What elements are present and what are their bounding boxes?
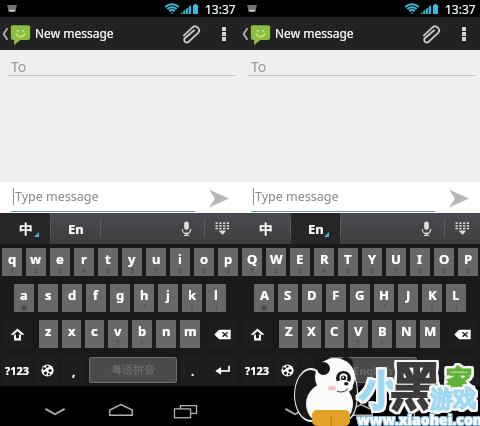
button[interactable]: s: [38, 284, 58, 312]
button[interactable]: Backspace: [447, 320, 478, 348]
button[interactable]: ?123: [242, 356, 272, 384]
button[interactable]: Attach: [170, 17, 208, 50]
staticText: B: [378, 322, 387, 340]
button[interactable]: More options: [448, 17, 480, 50]
button[interactable]: O: [434, 248, 454, 276]
button[interactable]: G: [350, 284, 370, 312]
button[interactable]: En: [291, 213, 340, 244]
staticText: 家: [445, 365, 471, 398]
button[interactable]: E: [290, 248, 310, 276]
button[interactable]: F: [326, 284, 346, 312]
button[interactable]: t: [98, 248, 118, 276]
button[interactable]: More options: [208, 17, 240, 50]
button[interactable]: New message: [0, 17, 114, 50]
button[interactable]: k: [182, 284, 202, 312]
button[interactable]: J: [398, 284, 418, 312]
staticText: 6: [130, 266, 135, 276]
staticText: 游戏: [431, 387, 477, 416]
button[interactable]: R: [314, 248, 334, 276]
button[interactable]: M: [420, 320, 440, 348]
button[interactable]: w: [26, 248, 46, 276]
button[interactable]: Attach: [410, 17, 448, 50]
button[interactable]: Shift: [2, 320, 32, 348]
button[interactable]: K: [422, 284, 442, 312]
button[interactable]: h: [134, 284, 154, 312]
button[interactable]: New message: [240, 17, 354, 50]
button[interactable]: Send: [195, 182, 240, 213]
staticText: 2: [34, 266, 39, 276]
button[interactable]: Change language: [35, 356, 59, 384]
button[interactable]: I: [410, 248, 430, 276]
button[interactable]: ?123: [2, 356, 32, 384]
button[interactable]: i: [170, 248, 190, 276]
button[interactable]: T: [338, 248, 358, 276]
button[interactable]: English: [329, 357, 417, 383]
button[interactable]: .: [421, 356, 444, 384]
button[interactable]: y: [122, 248, 142, 276]
button[interactable]: V: [348, 320, 368, 348]
button[interactable]: u: [146, 248, 166, 276]
button[interactable]: B: [372, 320, 392, 348]
button[interactable]: Change language: [275, 356, 299, 384]
button[interactable]: En: [51, 213, 100, 244]
button[interactable]: ,: [302, 356, 325, 384]
button[interactable]: H: [374, 284, 394, 312]
button[interactable]: f: [86, 284, 106, 312]
button[interactable]: a: [14, 284, 34, 312]
button[interactable]: c: [85, 320, 104, 348]
button[interactable]: b: [132, 320, 152, 348]
staticText: 家: [444, 362, 470, 395]
button[interactable]: .: [181, 356, 204, 384]
button[interactable]: Home: [88, 386, 153, 426]
button[interactable]: Recent apps: [153, 386, 218, 426]
button[interactable]: g: [110, 284, 130, 312]
button[interactable]: j: [158, 284, 178, 312]
button[interactable]: L: [446, 284, 466, 312]
button[interactable]: l: [206, 284, 226, 312]
button[interactable]: d: [62, 284, 82, 312]
button[interactable]: Hide keyboard: [445, 213, 480, 244]
button[interactable]: Hide keyboard: [205, 213, 240, 244]
button[interactable]: m: [180, 320, 200, 348]
button[interactable]: Back: [262, 386, 328, 426]
staticText: 家: [448, 362, 474, 395]
button[interactable]: S: [278, 284, 298, 312]
button[interactable]: Send: [435, 182, 480, 213]
button[interactable]: Backspace: [207, 320, 238, 348]
button[interactable]: Recent apps: [393, 386, 458, 426]
button[interactable]: z: [39, 320, 58, 348]
button[interactable]: o: [194, 248, 214, 276]
button[interactable]: C: [325, 320, 344, 348]
button[interactable]: U: [386, 248, 406, 276]
button[interactable]: Back: [22, 386, 88, 426]
staticText: u: [152, 250, 161, 268]
button[interactable]: Voice input: [169, 213, 204, 244]
button[interactable]: N: [396, 320, 416, 348]
button[interactable]: Home: [328, 386, 393, 426]
button[interactable]: ,: [62, 356, 85, 384]
button[interactable]: 中: [240, 213, 290, 244]
staticText: 游戏: [429, 383, 475, 412]
staticText: 小: [357, 365, 397, 415]
button[interactable]: Shift: [242, 320, 272, 348]
button[interactable]: Y: [362, 248, 382, 276]
button[interactable]: Enter: [447, 356, 478, 384]
button[interactable]: e: [50, 248, 70, 276]
button[interactable]: v: [108, 320, 128, 348]
button[interactable]: x: [62, 320, 81, 348]
button[interactable]: Q: [242, 248, 262, 276]
button[interactable]: Voice input: [409, 213, 444, 244]
button[interactable]: D: [302, 284, 322, 312]
button[interactable]: P: [458, 248, 478, 276]
button[interactable]: q: [2, 248, 22, 276]
button[interactable]: 粤语拼音: [89, 357, 177, 383]
button[interactable]: A: [254, 284, 274, 312]
button[interactable]: r: [74, 248, 94, 276]
button[interactable]: n: [156, 320, 176, 348]
button[interactable]: 中: [0, 213, 50, 244]
button[interactable]: X: [302, 320, 321, 348]
button[interactable]: W: [266, 248, 286, 276]
button[interactable]: Enter: [207, 356, 238, 384]
button[interactable]: Z: [279, 320, 298, 348]
button[interactable]: p: [218, 248, 238, 276]
